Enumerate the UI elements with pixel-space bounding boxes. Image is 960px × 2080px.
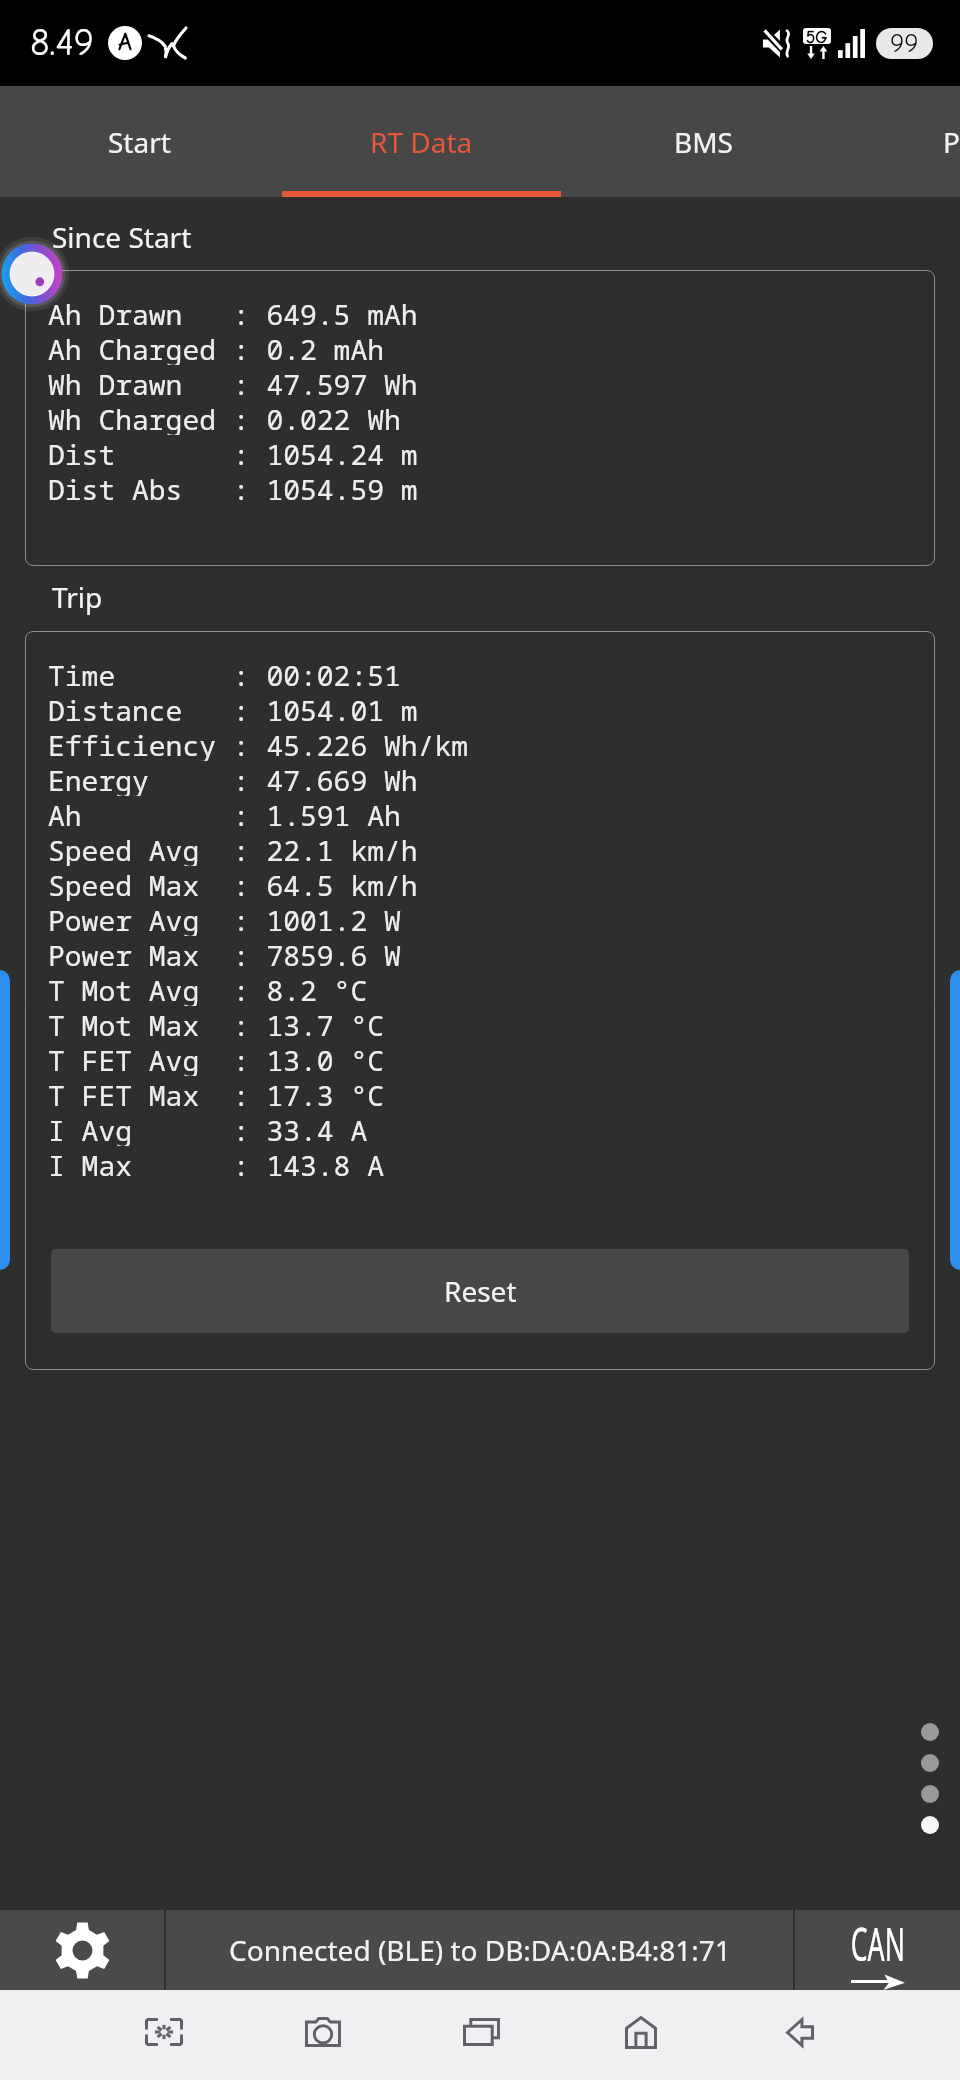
button[interactable]: Assistant bubble [0, 234, 72, 314]
staticText: RT Data [370, 123, 473, 161]
staticText: T Mot Max : 13.7 °C [48, 1006, 385, 1041]
staticText: 5G [806, 28, 828, 44]
button[interactable]: Settings [0, 1910, 164, 1990]
staticText: Wh Charged : 0.022 Wh [48, 400, 401, 435]
staticText: Reset [444, 1272, 517, 1310]
staticText: Start [108, 123, 171, 161]
button[interactable]: CAN forwarding [795, 1910, 960, 1990]
staticText: Profile [943, 123, 960, 161]
staticText: Dist : 1054.24 m [48, 435, 418, 470]
staticText: T Mot Avg : 8.2 °C [48, 971, 368, 1006]
staticText: Ah : 1.591 Ah [48, 796, 401, 831]
staticText: 99 [890, 28, 919, 59]
staticText: Energy : 47.669 Wh [48, 761, 418, 796]
button[interactable]: Connected (BLE) to DB:DA:0A:B4:81:71 [166, 1910, 793, 1990]
button[interactable]: Camera [243, 1990, 402, 2080]
button[interactable]: Recent apps [402, 1990, 561, 2080]
staticText: I Max : 143.8 A [48, 1146, 385, 1181]
staticText: Power Max : 7859.6 W [48, 936, 401, 971]
staticText: Ah Charged : 0.2 mAh [48, 330, 385, 365]
staticText: T FET Max : 17.3 °C [48, 1076, 385, 1111]
staticText: Distance : 1054.01 m [48, 691, 418, 726]
staticText: 8.49 [30, 21, 94, 65]
button[interactable]: RT Data [280, 86, 562, 197]
staticText: A [118, 28, 132, 56]
button[interactable]: Reset [51, 1249, 909, 1333]
staticText: Time : 00:02:51 [48, 656, 401, 691]
staticText: Ah Drawn : 649.5 mAh [48, 295, 418, 330]
staticText: Dist Abs : 1054.59 m [48, 470, 418, 505]
button[interactable]: Home [561, 1990, 720, 2080]
staticText: Trip [52, 578, 103, 616]
staticText: Power Avg : 1001.2 W [48, 901, 401, 936]
staticText: I Avg : 33.4 A [48, 1111, 368, 1146]
button[interactable]: BMS [562, 86, 844, 197]
staticText: Since Start [52, 218, 192, 256]
button[interactable]: Screenshot [84, 1990, 243, 2080]
staticText: Connected (BLE) to DB:DA:0A:B4:81:71 [229, 1931, 731, 1969]
staticText: Wh Drawn : 47.597 Wh [48, 365, 418, 400]
staticText: Speed Max : 64.5 km/h [48, 866, 418, 901]
staticText: CAN [851, 1912, 905, 1975]
staticText: Speed Avg : 22.1 km/h [48, 831, 418, 866]
button[interactable]: Start [0, 86, 280, 197]
staticText: Efficiency : 45.226 Wh/km [48, 726, 469, 761]
button[interactable]: Back [720, 1990, 879, 2080]
staticText: BMS [674, 123, 733, 161]
button[interactable]: Profile [844, 86, 960, 197]
staticText: T FET Avg : 13.0 °C [48, 1041, 385, 1076]
